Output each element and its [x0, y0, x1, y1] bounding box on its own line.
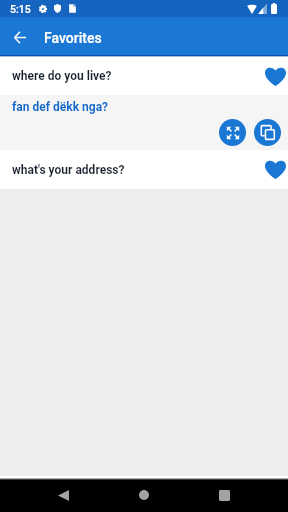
button[interactable]: what's your address?	[0, 150, 288, 189]
button[interactable]: Recent apps	[204, 479, 244, 511]
button[interactable]: Favorite	[262, 57, 288, 95]
button[interactable]: Expand fullscreen	[219, 119, 246, 146]
button[interactable]: Home	[124, 479, 164, 511]
staticText: 5:15	[10, 3, 31, 15]
button[interactable]: Copy text	[254, 119, 281, 146]
staticText: Favorites	[44, 30, 102, 46]
button[interactable]: fan def dëkk nga?	[0, 95, 288, 150]
button[interactable]: where do you live?	[0, 57, 288, 95]
staticText: where do you live?	[12, 69, 112, 83]
staticText: what's your address?	[12, 163, 125, 177]
button[interactable]: Back	[43, 479, 83, 511]
staticText: fan def dëkk nga?	[12, 100, 109, 114]
button[interactable]: Favorite	[262, 150, 288, 189]
button[interactable]: Back	[0, 17, 40, 55]
